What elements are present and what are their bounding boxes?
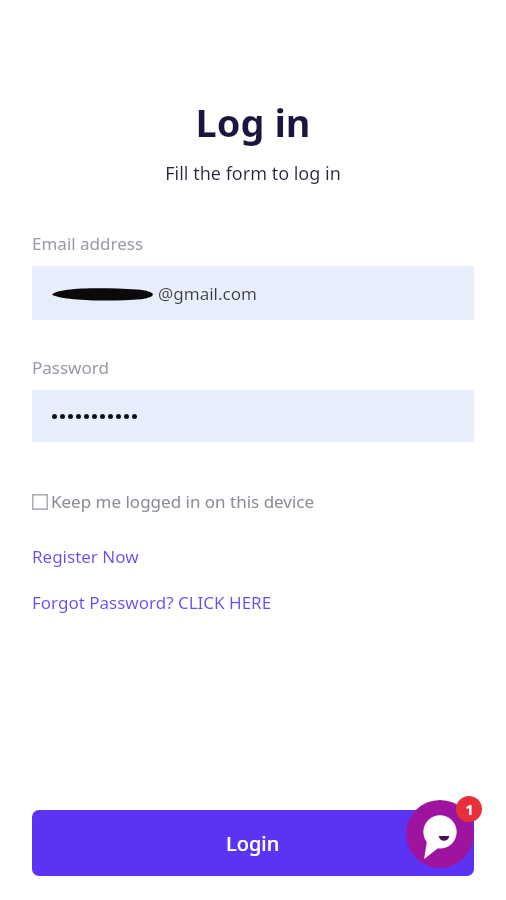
staticText: Forgot Password? CLICK HERE bbox=[32, 591, 272, 614]
staticText: Log in bbox=[0, 96, 506, 148]
staticText: Keep me logged in on this device bbox=[51, 490, 315, 513]
staticText: Password bbox=[32, 356, 109, 379]
button[interactable]: @gmail.com bbox=[32, 266, 474, 320]
staticText: 1 bbox=[465, 800, 474, 819]
button[interactable]: Login bbox=[32, 810, 474, 876]
button[interactable]: Register Now bbox=[32, 545, 139, 568]
staticText: Login bbox=[226, 830, 280, 857]
staticText: Fill the form to log in bbox=[0, 161, 506, 186]
button[interactable]: Forgot Password? CLICK HERE bbox=[32, 591, 272, 614]
staticText: Email address bbox=[32, 232, 144, 255]
button[interactable]: Keep me logged in on this device bbox=[32, 490, 315, 513]
staticText: @gmail.com bbox=[158, 282, 257, 305]
button[interactable] bbox=[32, 390, 474, 442]
staticText: Register Now bbox=[32, 545, 139, 568]
button[interactable]: Open chat bbox=[406, 800, 474, 868]
